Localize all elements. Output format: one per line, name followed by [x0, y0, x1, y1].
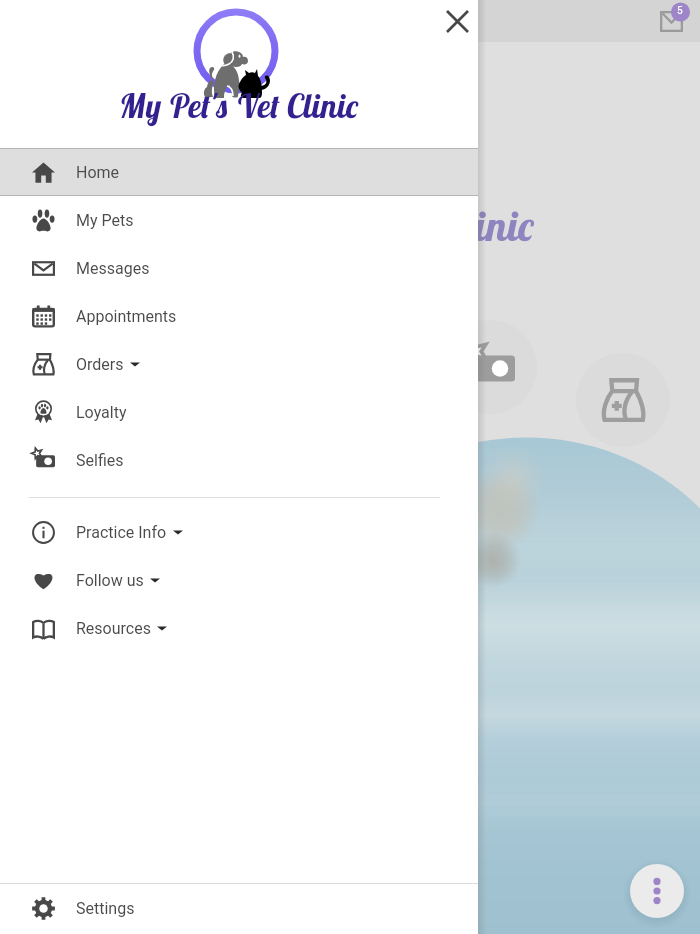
- button[interactable]: Messages: [0, 244, 478, 292]
- button[interactable]: More options: [630, 864, 684, 918]
- staticText: Loyalty: [76, 403, 127, 422]
- button[interactable]: Settings: [0, 884, 478, 932]
- button[interactable]: Selfies: [443, 320, 537, 414]
- staticText: Follow us: [76, 571, 144, 590]
- button[interactable]: My Pets: [0, 196, 478, 244]
- button[interactable]: Pet food: [576, 353, 670, 447]
- button[interactable]: Selfies: [0, 436, 478, 484]
- staticText: Settings: [76, 899, 135, 918]
- button[interactable]: Messages: [652, 0, 698, 46]
- button[interactable]: Follow us: [0, 556, 478, 604]
- staticText: Messages: [76, 259, 150, 278]
- button[interactable]: Appointments: [0, 292, 478, 340]
- staticText: Home: [76, 163, 120, 182]
- staticText: My Pet's Vet Clinic: [230, 199, 535, 252]
- staticText: My Pets: [76, 211, 134, 230]
- staticText: Selfies: [76, 451, 124, 470]
- button[interactable]: Orders: [0, 340, 478, 388]
- button[interactable]: Practice Info: [0, 508, 478, 556]
- staticText: 5: [677, 5, 683, 17]
- button[interactable]: Loyalty: [0, 388, 478, 436]
- staticText: My Pet's Vet Clinic: [0, 85, 478, 126]
- button[interactable]: Resources: [0, 604, 478, 652]
- staticText: Resources: [76, 619, 151, 638]
- staticText: Appointments: [76, 307, 177, 326]
- button[interactable]: Home: [0, 148, 478, 196]
- staticText: Practice Info: [76, 523, 167, 542]
- button[interactable]: Close: [438, 2, 476, 40]
- staticText: Orders: [76, 355, 124, 374]
